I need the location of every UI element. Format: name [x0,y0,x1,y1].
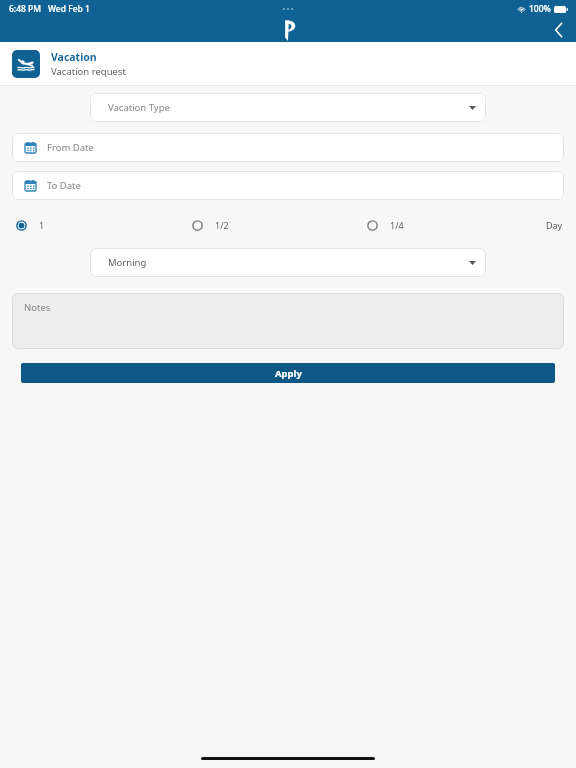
staticText: Vacation [51,50,97,64]
staticText: Vacation request [51,65,126,78]
button[interactable]: Vacation Type [90,93,486,122]
staticText: Notes [24,301,51,314]
staticText: 1/2 [215,219,229,231]
staticText: 100% [529,3,551,15]
button[interactable]: 1/2 [190,214,231,236]
button[interactable]: Back [542,18,576,42]
button[interactable]: 1/4 [365,214,406,236]
staticText: Vacation Type [108,101,170,114]
button[interactable]: Vacation [0,42,576,85]
staticText: 1 [39,219,45,231]
button[interactable]: From Date [12,133,564,162]
button[interactable]: Notes [12,293,564,349]
button[interactable]: Morning [90,248,486,277]
button[interactable]: Home [273,18,303,42]
button[interactable]: Apply [21,363,555,383]
staticText: Morning [108,256,147,269]
button[interactable]: 1 [14,214,47,236]
staticText: Day [546,219,563,231]
staticText: Wed Feb 1 [48,3,90,15]
staticText: To Date [47,179,81,192]
staticText: 1/4 [390,219,404,231]
staticText: 6:48 PM [9,3,42,15]
button[interactable]: To Date [12,171,564,200]
staticText: From Date [47,141,94,154]
staticText: Apply [275,367,302,380]
